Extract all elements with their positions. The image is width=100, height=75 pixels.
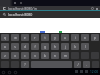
button[interactable]: Home: [7, 70, 11, 74]
button[interactable]: ?: [21, 61, 29, 68]
staticText: y: [54, 36, 56, 40]
button[interactable]: localhost:8080: [0, 11, 100, 18]
staticText: l: [85, 45, 86, 49]
staticText: g: [44, 45, 46, 49]
button[interactable]: u: [61, 34, 69, 41]
staticText: t: [44, 36, 46, 40]
button[interactable]: o: [81, 34, 89, 41]
button[interactable]: j: [61, 43, 69, 50]
staticText: u: [64, 36, 66, 40]
button[interactable]: a: [1, 43, 9, 50]
staticText: v: [34, 54, 36, 58]
staticText: n: [54, 54, 56, 58]
staticText: i: [75, 36, 76, 40]
button[interactable]: s: [11, 43, 19, 50]
button[interactable]: t: [41, 34, 49, 41]
staticText: s: [14, 45, 16, 49]
staticText: 12:00: [90, 70, 99, 74]
button[interactable]: m: [61, 52, 69, 59]
staticText: b: [44, 54, 46, 58]
button[interactable]: h: [51, 43, 59, 50]
staticText: e: [24, 36, 26, 40]
button[interactable]: Back: [1, 70, 5, 74]
button[interactable]: c: [21, 52, 29, 59]
button[interactable]: x: [11, 52, 19, 59]
button[interactable]: g: [41, 43, 49, 50]
staticText: p: [94, 36, 96, 40]
button[interactable]: d: [21, 43, 29, 50]
staticText: ?: [24, 63, 26, 67]
staticText: /: [77, 63, 79, 67]
staticText: d: [24, 45, 26, 49]
button[interactable]: v: [31, 52, 39, 59]
button[interactable]: Menu: [95, 7, 98, 10]
button[interactable]: i: [71, 34, 79, 41]
staticText: x: [14, 54, 16, 58]
button[interactable]: q: [1, 34, 9, 41]
staticText: j: [65, 45, 66, 49]
button[interactable]: e: [21, 34, 29, 41]
button[interactable]: r: [31, 34, 39, 41]
button[interactable]: Clear: [91, 7, 94, 10]
button[interactable]: n: [51, 52, 59, 59]
staticText: o: [84, 36, 86, 40]
button[interactable]: /: [74, 61, 81, 68]
staticText: C: [3, 6, 6, 10]
staticText: f: [34, 45, 36, 49]
button[interactable]: b: [41, 52, 49, 59]
staticText: localhost:8080: [8, 12, 33, 17]
staticText: q: [4, 36, 6, 40]
button[interactable]: p: [91, 34, 99, 41]
staticText: z: [4, 54, 6, 58]
button[interactable]: f: [31, 43, 39, 50]
staticText: m: [64, 54, 67, 58]
button[interactable]: l: [81, 43, 89, 50]
button[interactable]: z: [1, 52, 9, 59]
button[interactable]: Tab: [0, 0, 13, 6]
staticText: localhost:8080/in: [8, 6, 37, 10]
staticText: k: [74, 45, 76, 49]
staticText: r: [34, 36, 36, 40]
button[interactable]: Recents: [13, 70, 17, 74]
staticText: w: [14, 36, 17, 40]
button[interactable]: w: [11, 34, 19, 41]
button[interactable]: k: [71, 43, 79, 50]
staticText: a: [4, 45, 6, 49]
staticText: c: [24, 54, 26, 58]
button[interactable]: Site info: [2, 6, 6, 10]
staticText: h: [54, 45, 56, 49]
button[interactable]: y: [51, 34, 59, 41]
button[interactable]: .: [83, 61, 90, 68]
staticText: .: [86, 63, 87, 67]
